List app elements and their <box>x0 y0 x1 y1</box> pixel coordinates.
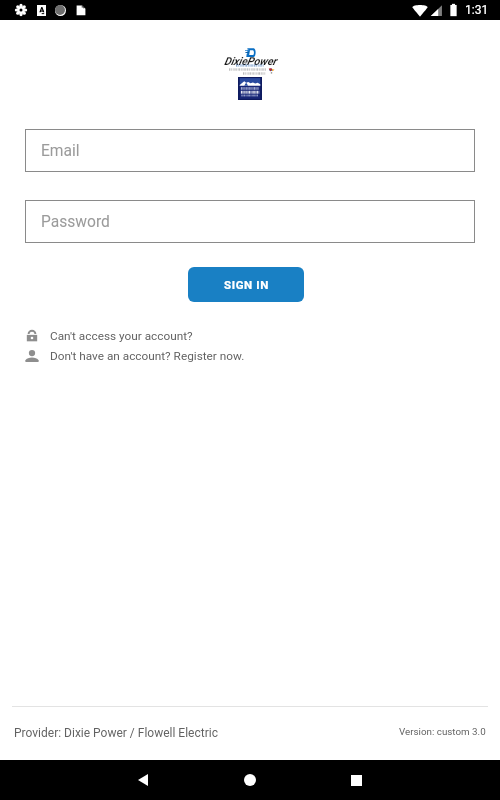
button[interactable]: SIGN IN <box>188 267 304 302</box>
button[interactable]: Back <box>121 760 165 800</box>
staticText: SIGN IN <box>224 278 269 291</box>
staticText: Email <box>41 142 80 160</box>
staticText: DixiePower <box>224 55 277 68</box>
button[interactable]: Home <box>228 760 272 800</box>
staticText: Version: custom 3.0 <box>399 726 486 737</box>
staticText: Provider: Dixie Power / Flowell Electric <box>14 726 218 740</box>
staticText: 1:31 <box>465 3 489 17</box>
button[interactable]: Can't access your account? <box>25 329 193 343</box>
staticText: Can't access your account? <box>50 329 193 343</box>
staticText: Password <box>41 213 110 231</box>
button[interactable]: Password <box>25 200 475 243</box>
button[interactable]: Recent apps <box>334 760 378 800</box>
staticText: Don't have an account? Register now. <box>50 349 245 363</box>
button[interactable]: Don't have an account? Register now. <box>25 349 245 363</box>
button[interactable]: Email <box>25 129 475 172</box>
